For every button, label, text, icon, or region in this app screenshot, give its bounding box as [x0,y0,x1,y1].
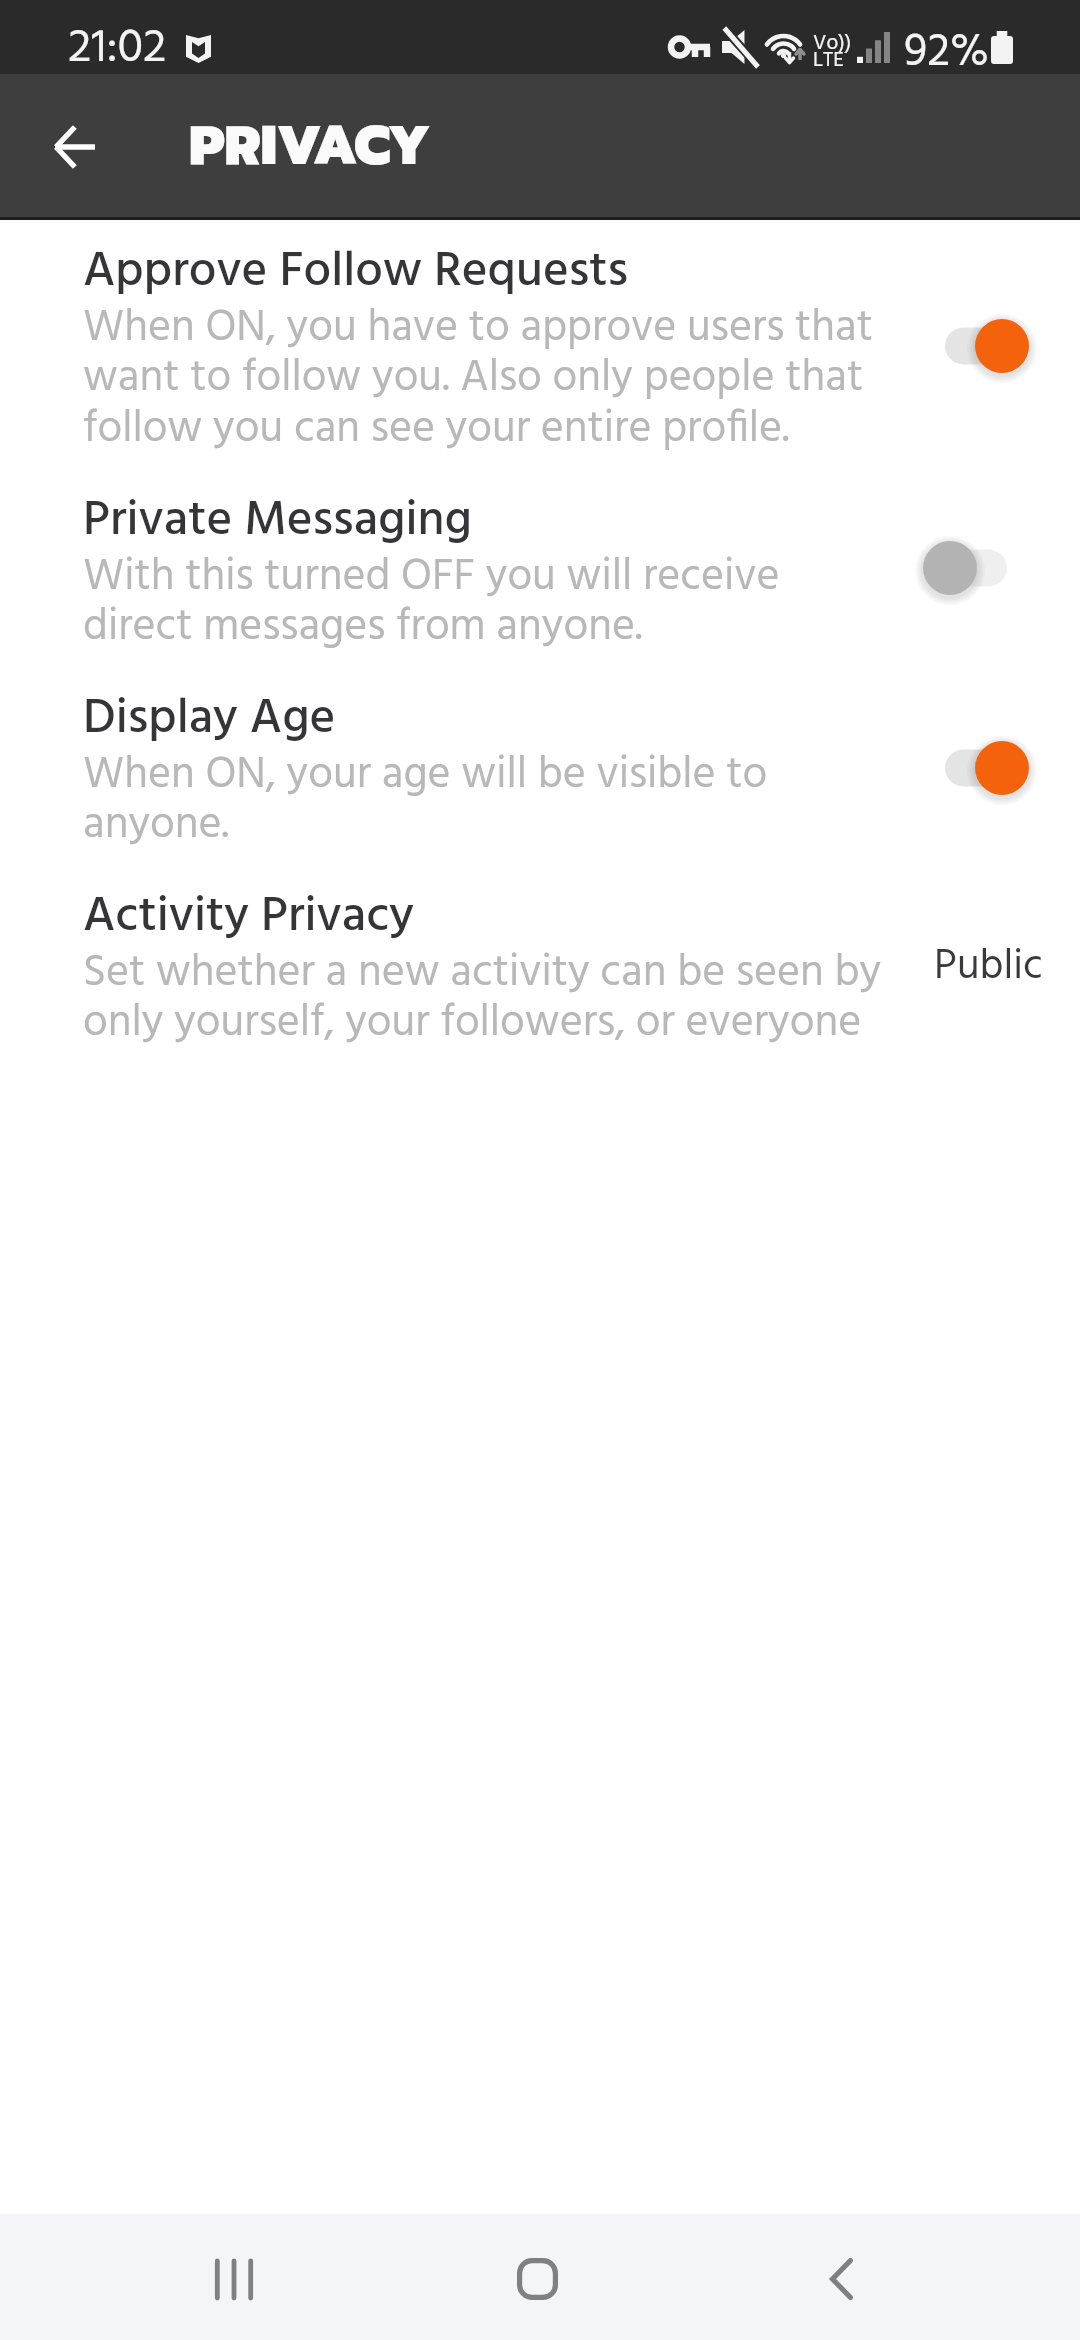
staticText: Private Messaging [83,482,472,560]
staticText: Display Age [83,680,336,758]
button[interactable]: Back [22,95,126,199]
button[interactable]: Back [771,2232,911,2326]
button[interactable]: Recent apps [165,2232,305,2326]
staticText: Approve Follow Requests [83,233,629,311]
staticText: anyone. [83,791,229,861]
staticText: Public [934,934,1043,1001]
staticText: Set whether a new activity can be seen b… [83,939,882,1009]
staticText: PRIVACY [189,105,431,187]
button[interactable]: Display Age toggle [917,723,1035,813]
button[interactable]: Home [467,2232,607,2326]
staticText: Activity Privacy [83,878,414,956]
staticText: 21:02 [68,11,167,85]
staticText: want to follow you. Also only people tha… [83,344,864,414]
staticText: direct messages from anyone. [83,593,643,663]
staticText: Vo)) [813,27,852,61]
button[interactable]: Public [922,922,1054,1012]
staticText: With this turned OFF you will receive [83,543,780,613]
button[interactable]: Approve Follow Requests toggle [917,301,1035,391]
staticText: only yourself, your followers, or everyo… [83,989,862,1059]
button[interactable]: Private Messaging toggle [917,523,1035,613]
staticText: LTE [813,44,844,78]
staticText: 92% [904,16,989,90]
staticText: When ON, you have to approve users that [83,294,873,364]
staticText: When ON, your age will be visible to [83,741,768,811]
staticText: follow you can see your entire profile. [83,395,790,465]
